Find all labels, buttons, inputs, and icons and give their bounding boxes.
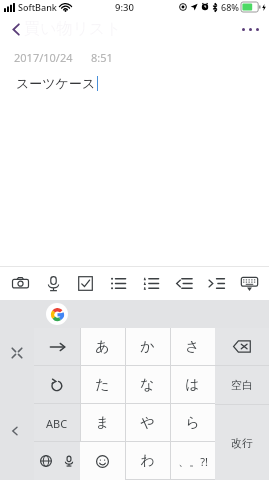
button[interactable]: あ <box>80 328 125 366</box>
staticText: 9:30 <box>115 1 134 14</box>
staticText: あ <box>95 338 110 356</box>
button[interactable]: Back <box>0 14 32 44</box>
button[interactable]: ら <box>170 404 215 442</box>
button[interactable]: さ <box>170 328 215 366</box>
button[interactable]: Voice input <box>39 267 67 299</box>
button[interactable]: Google search <box>46 303 68 325</box>
staticText: か <box>140 338 155 356</box>
staticText: ABC <box>46 416 68 431</box>
staticText: 2017/10/24 <box>14 50 73 65</box>
button[interactable]: Resize keyboard <box>4 340 30 366</box>
button[interactable]: Checkbox list <box>71 267 99 299</box>
button[interactable]: や <box>125 404 170 442</box>
button[interactable]: 、。?! <box>170 442 215 480</box>
button[interactable]: ま <box>80 404 125 442</box>
staticText: SoftBank <box>18 1 57 13</box>
button[interactable]: Undo <box>34 366 80 404</box>
staticText: 空白 <box>231 378 253 392</box>
button[interactable]: な <box>125 366 170 404</box>
button[interactable]: ABC <box>34 404 80 442</box>
button[interactable]: Next candidate <box>34 328 80 366</box>
button[interactable]: Voice input <box>57 442 80 480</box>
staticText: スーツケース <box>16 75 96 91</box>
button[interactable]: わ <box>125 442 170 480</box>
button[interactable]: Bulleted list <box>104 267 132 299</box>
button[interactable]: Hide keyboard <box>235 267 263 299</box>
staticText: 8:51 <box>91 50 113 65</box>
button[interactable]: Increase indent <box>202 267 230 299</box>
staticText: わ <box>140 452 155 470</box>
button[interactable]: Decrease indent <box>170 267 198 299</box>
staticText: は <box>185 376 200 394</box>
staticText: ら <box>185 414 200 432</box>
button[interactable]: 空白 <box>215 366 269 404</box>
button[interactable]: 改行 <box>215 405 269 480</box>
button[interactable]: は <box>170 366 215 404</box>
staticText: 改行 <box>231 436 253 450</box>
button[interactable]: Change language <box>34 442 57 480</box>
staticText: 、。?! <box>178 454 208 469</box>
staticText: ま <box>95 414 110 432</box>
staticText: さ <box>185 338 200 356</box>
button[interactable]: か <box>125 328 170 366</box>
staticText: た <box>95 376 110 394</box>
button[interactable]: Backspace <box>215 328 269 365</box>
button[interactable]: Emoji <box>80 442 125 480</box>
staticText: 68% <box>221 1 239 13</box>
button[interactable]: Numbered list <box>137 267 165 299</box>
button[interactable]: た <box>80 366 125 404</box>
staticText: な <box>140 376 155 394</box>
button[interactable]: Camera <box>6 267 34 299</box>
staticText: や <box>140 414 155 432</box>
button[interactable]: More options <box>231 14 269 44</box>
button[interactable]: Move cursor left <box>0 416 30 446</box>
